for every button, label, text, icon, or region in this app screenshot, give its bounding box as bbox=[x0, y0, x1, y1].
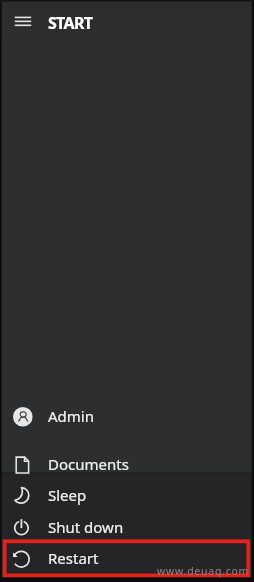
button[interactable]: Admin bbox=[0, 400, 254, 432]
staticText: START bbox=[48, 12, 93, 34]
staticText: Admin bbox=[48, 406, 94, 426]
button[interactable]: Sleep bbox=[0, 479, 254, 511]
button[interactable]: Restart bbox=[0, 542, 254, 574]
staticText: Sleep bbox=[48, 485, 87, 505]
button[interactable]: Shut down bbox=[0, 511, 254, 543]
button[interactable]: Menu bbox=[0, 0, 44, 40]
staticText: Documents bbox=[48, 454, 129, 474]
staticText: Restart bbox=[48, 548, 99, 568]
button[interactable]: Documents bbox=[0, 448, 254, 480]
staticText: www.deuaq.com bbox=[157, 564, 250, 578]
staticText: Shut down bbox=[48, 517, 124, 537]
